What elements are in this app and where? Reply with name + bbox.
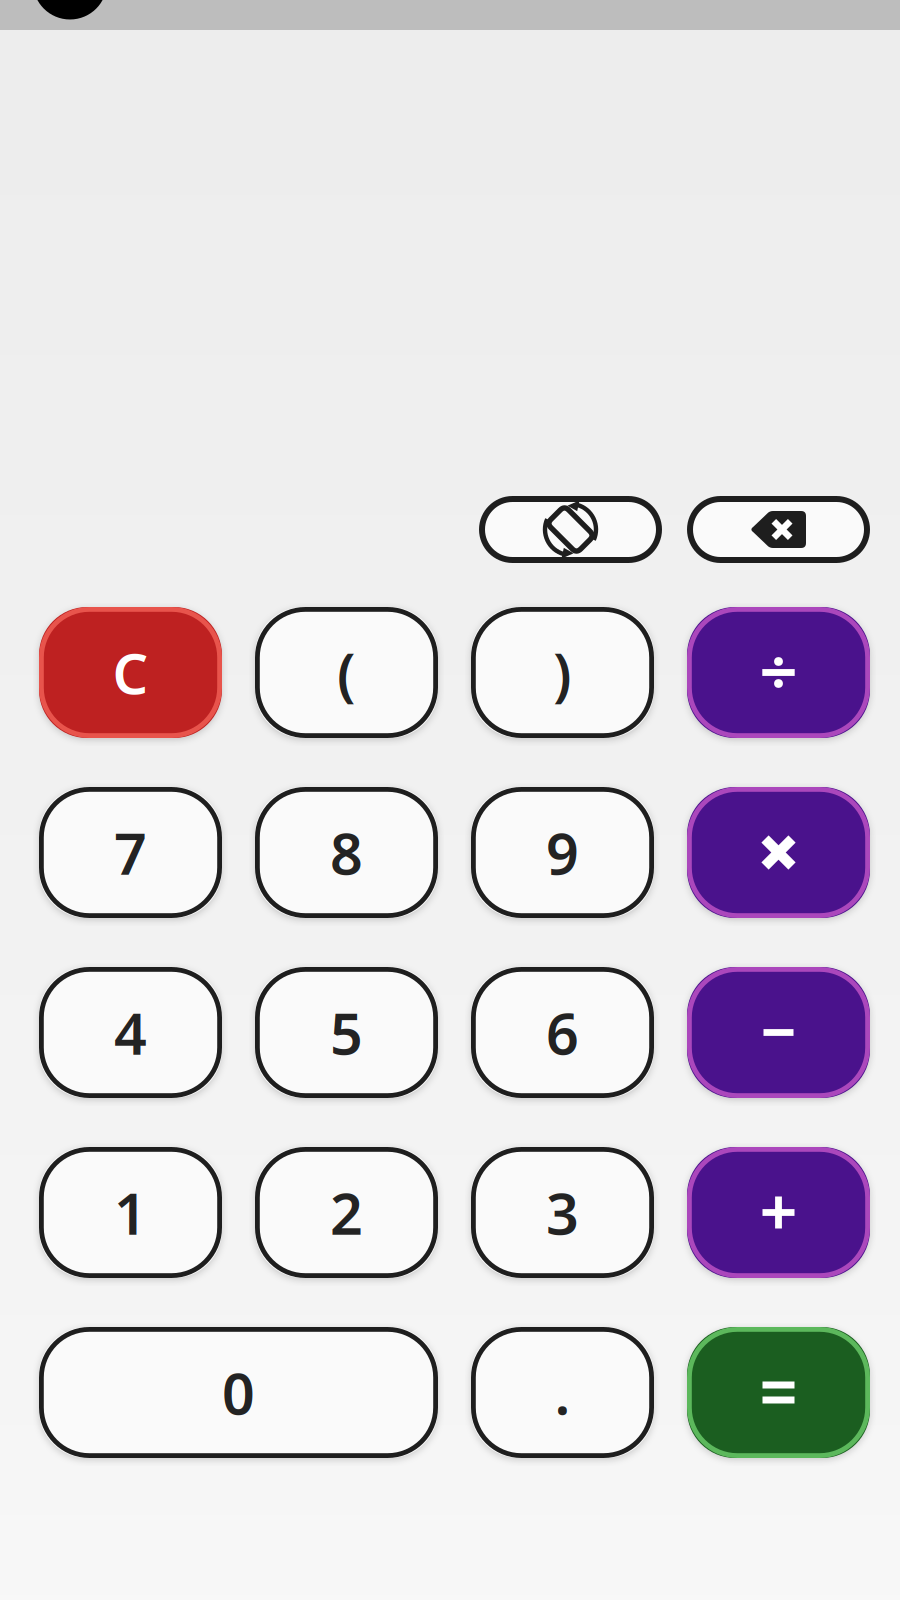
staticText: 3 bbox=[546, 1174, 579, 1250]
staticText: 9 bbox=[546, 814, 579, 890]
button[interactable]: Minus bbox=[687, 967, 870, 1098]
button[interactable]: C bbox=[39, 607, 222, 738]
staticText: 2 bbox=[330, 1174, 363, 1250]
button[interactable]: 6 bbox=[471, 967, 654, 1098]
button[interactable]: 9 bbox=[471, 787, 654, 918]
button[interactable]: Divide bbox=[687, 607, 870, 738]
button[interactable]: Backspace bbox=[687, 496, 870, 563]
button[interactable]: ( bbox=[255, 607, 438, 738]
button[interactable]: 8 bbox=[255, 787, 438, 918]
button[interactable]: . bbox=[471, 1327, 654, 1458]
staticText: C bbox=[112, 635, 148, 710]
button[interactable]: 7 bbox=[39, 787, 222, 918]
button[interactable]: 3 bbox=[471, 1147, 654, 1278]
staticText: 7 bbox=[114, 814, 147, 890]
button[interactable]: ) bbox=[471, 607, 654, 738]
button[interactable]: 5 bbox=[255, 967, 438, 1098]
button[interactable]: Rotate screen bbox=[479, 496, 662, 563]
staticText: 8 bbox=[330, 814, 363, 890]
staticText: 4 bbox=[114, 994, 147, 1070]
button[interactable]: Multiply bbox=[687, 787, 870, 918]
button[interactable]: 4 bbox=[39, 967, 222, 1098]
button[interactable]: 0 bbox=[39, 1327, 438, 1458]
staticText: 5 bbox=[330, 994, 363, 1070]
staticText: . bbox=[554, 1354, 570, 1430]
staticText: ) bbox=[553, 634, 572, 710]
staticText: ( bbox=[337, 634, 356, 710]
staticText: 6 bbox=[546, 994, 579, 1070]
button[interactable]: Plus bbox=[687, 1147, 870, 1278]
button[interactable]: Equals bbox=[687, 1327, 870, 1458]
button[interactable]: 2 bbox=[255, 1147, 438, 1278]
staticText: 1 bbox=[114, 1174, 147, 1250]
button[interactable]: 1 bbox=[39, 1147, 222, 1278]
staticText: 0 bbox=[222, 1354, 255, 1430]
